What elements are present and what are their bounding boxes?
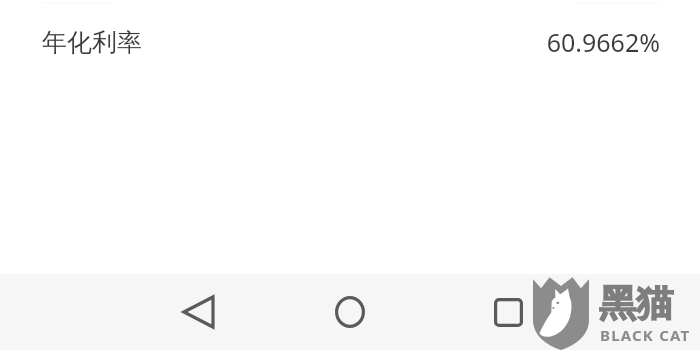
staticText: 黑猫 xyxy=(599,280,673,327)
staticText: 年化利率 xyxy=(42,27,142,58)
button[interactable]: Recent apps xyxy=(478,283,538,341)
button[interactable]: Back xyxy=(168,283,228,341)
button[interactable]: 年化利率 xyxy=(0,14,700,70)
staticText: BLACK CAT xyxy=(600,325,691,345)
button[interactable]: Home xyxy=(320,283,380,341)
staticText: 60.9662% xyxy=(546,25,660,59)
